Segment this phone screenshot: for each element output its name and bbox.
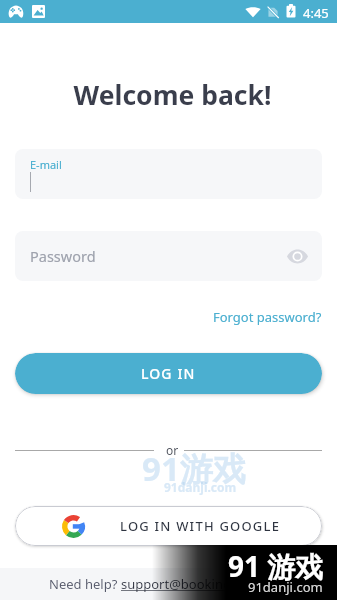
staticText: 91 游戏 — [228, 547, 324, 585]
staticText: 4:45 — [303, 4, 329, 22]
button[interactable]: E-mail — [15, 149, 322, 199]
staticText: LOG IN WITH GOOGLE — [120, 517, 281, 535]
button[interactable]: LOG IN — [15, 353, 322, 394]
staticText: 91游戏 — [142, 446, 246, 491]
staticText: 91danji.com — [164, 479, 237, 495]
button[interactable]: Forgot password? — [213, 308, 322, 326]
staticText: Password — [30, 246, 96, 266]
staticText: Welcome back! — [4, 77, 337, 113]
button[interactable]: Password — [15, 231, 322, 281]
staticText: 91danji.com — [248, 578, 323, 596]
staticText: Need help? — [49, 575, 121, 593]
staticText: E-mail — [30, 157, 62, 172]
button[interactable]: Show password — [284, 243, 310, 269]
button[interactable]: LOG IN WITH GOOGLE — [15, 506, 322, 546]
button[interactable]: support@bookingtime.com — [121, 575, 289, 593]
staticText: or — [166, 442, 179, 458]
staticText: LOG IN — [141, 364, 196, 383]
